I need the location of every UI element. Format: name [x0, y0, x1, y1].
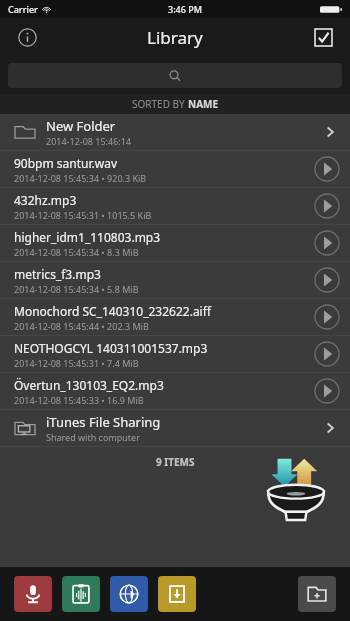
- button[interactable]: 432hz.mp3: [0, 188, 350, 224]
- staticText: NAME: [188, 97, 219, 111]
- staticText: 2014-12-08 15:45:31 • 7.4 MiB: [14, 357, 139, 369]
- button[interactable]: Play Monochord SC_140310_232622.aiff: [312, 302, 342, 332]
- button[interactable]: Search: [8, 63, 342, 88]
- staticText: 3:46 PM: [168, 3, 202, 15]
- staticText: 2014-12-08 15:45:33 • 16.9 MiB: [14, 394, 144, 406]
- button[interactable]: iTunes File Sharing: [0, 410, 350, 446]
- button[interactable]: Play Övertun_130103_EQ2.mp3: [312, 376, 342, 406]
- button[interactable]: 90bpm santur.wav: [0, 151, 350, 187]
- button[interactable]: New Folder: [0, 114, 350, 150]
- staticText: SORTED BY: [132, 97, 188, 111]
- staticText: 2014-12-08 15:45:31 • 1015.5 KiB: [14, 209, 152, 221]
- staticText: 2014-12-08 15:45:34 • 8.3 MiB: [14, 246, 139, 258]
- staticText: New Folder: [46, 117, 116, 135]
- staticText: NEOTHOGCYL 140311001537.mp3: [14, 340, 208, 356]
- staticText: 9 ITEMS: [156, 455, 195, 469]
- button[interactable]: Import: [158, 576, 196, 612]
- button[interactable]: Play higher_idm1_110803.mp3: [312, 228, 342, 258]
- button[interactable]: Recordings: [62, 576, 100, 612]
- button[interactable]: Monochord SC_140310_232622.aiff: [0, 299, 350, 335]
- staticText: Library: [147, 26, 203, 49]
- button[interactable]: Record: [14, 576, 52, 612]
- button[interactable]: Övertun_130103_EQ2.mp3: [0, 373, 350, 409]
- button[interactable]: Play 90bpm santur.wav: [312, 154, 342, 184]
- button[interactable]: NEOTHOGCYL 140311001537.mp3: [0, 336, 350, 372]
- button[interactable]: New folder: [298, 576, 336, 612]
- button[interactable]: higher_idm1_110803.mp3: [0, 225, 350, 261]
- button[interactable]: Web browser: [110, 576, 148, 612]
- staticText: 2014-12-08 15:46:14: [46, 135, 132, 147]
- staticText: higher_idm1_110803.mp3: [14, 229, 161, 245]
- button[interactable]: Info: [12, 22, 42, 52]
- staticText: metrics_f3.mp3: [14, 266, 101, 282]
- staticText: 90bpm santur.wav: [14, 155, 117, 171]
- staticText: 2014-12-08 15:45:34 • 920.3 KiB: [14, 172, 147, 184]
- staticText: 432hz.mp3: [14, 192, 77, 208]
- staticText: Monochord SC_140310_232622.aiff: [14, 303, 211, 319]
- staticText: Shared with computer: [46, 431, 140, 443]
- staticText: iTunes File Sharing: [46, 413, 161, 431]
- button[interactable]: Select all: [308, 22, 338, 52]
- staticText: 2014-12-08 15:45:44 • 202.3 MiB: [14, 320, 149, 332]
- button[interactable]: Play NEOTHOGCYL 140311001537.mp3: [312, 339, 342, 369]
- button[interactable]: App icon: [255, 449, 337, 531]
- staticText: 2014-12-08 15:45:34 • 5.8 MiB: [14, 283, 139, 295]
- button[interactable]: Play metrics_f3.mp3: [312, 265, 342, 295]
- button[interactable]: Play 432hz.mp3: [312, 191, 342, 221]
- staticText: Övertun_130103_EQ2.mp3: [14, 377, 164, 393]
- button[interactable]: metrics_f3.mp3: [0, 262, 350, 298]
- staticText: Carrier: [8, 3, 38, 15]
